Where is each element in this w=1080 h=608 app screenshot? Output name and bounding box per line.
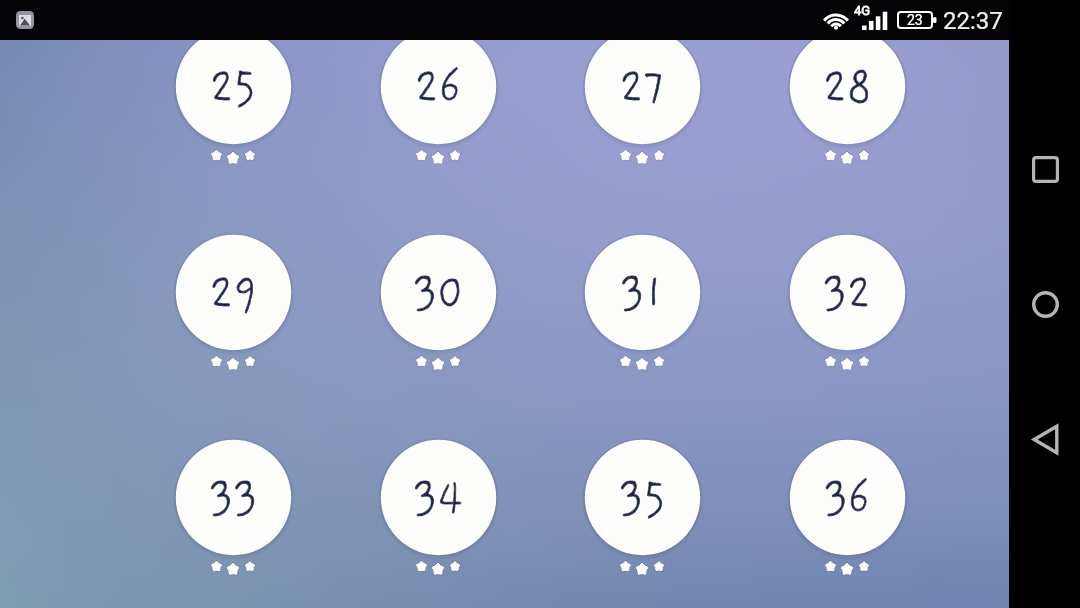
staticText: 29: [210, 265, 257, 320]
button[interactable]: Home: [1015, 274, 1075, 334]
button[interactable]: 34: [368, 439, 508, 589]
button[interactable]: 35: [572, 439, 712, 589]
button[interactable]: Screenshot notification: [16, 11, 34, 29]
staticText: 33: [209, 470, 258, 525]
staticText: 33: [209, 470, 258, 525]
staticText: 29: [210, 265, 257, 320]
staticText: 26: [415, 59, 461, 114]
staticText: 27: [620, 59, 665, 114]
staticText: 27: [620, 59, 665, 114]
button[interactable]: 25: [163, 28, 303, 178]
staticText: 35: [619, 470, 666, 525]
button[interactable]: 36: [777, 439, 917, 589]
staticText: 28: [823, 59, 872, 114]
button[interactable]: Recents: [1015, 139, 1075, 199]
staticText: 31: [620, 265, 664, 320]
button[interactable]: 33: [163, 439, 303, 589]
staticText: 26: [415, 59, 461, 114]
staticText: 30: [413, 265, 464, 320]
button[interactable]: 26: [368, 28, 508, 178]
staticText: 34: [413, 470, 463, 525]
staticText: 32: [823, 265, 871, 320]
staticText: 31: [620, 265, 664, 320]
staticText: 4G: [854, 3, 871, 18]
button[interactable]: Back: [1015, 409, 1075, 469]
staticText: 36: [824, 470, 870, 525]
staticText: 23: [907, 12, 923, 28]
staticText: 35: [619, 470, 666, 525]
button[interactable]: 30: [368, 234, 508, 384]
staticText: 28: [823, 59, 872, 114]
staticText: 36: [824, 470, 870, 525]
staticText: 32: [823, 265, 871, 320]
staticText: 34: [413, 470, 463, 525]
staticText: 22:37: [943, 7, 1003, 35]
button[interactable]: 27: [572, 28, 712, 178]
button[interactable]: 31: [572, 234, 712, 384]
button[interactable]: 28: [777, 28, 917, 178]
staticText: 30: [413, 265, 464, 320]
staticText: 25: [210, 59, 256, 114]
button[interactable]: 32: [777, 234, 917, 384]
staticText: 25: [210, 59, 256, 114]
button[interactable]: 29: [163, 234, 303, 384]
